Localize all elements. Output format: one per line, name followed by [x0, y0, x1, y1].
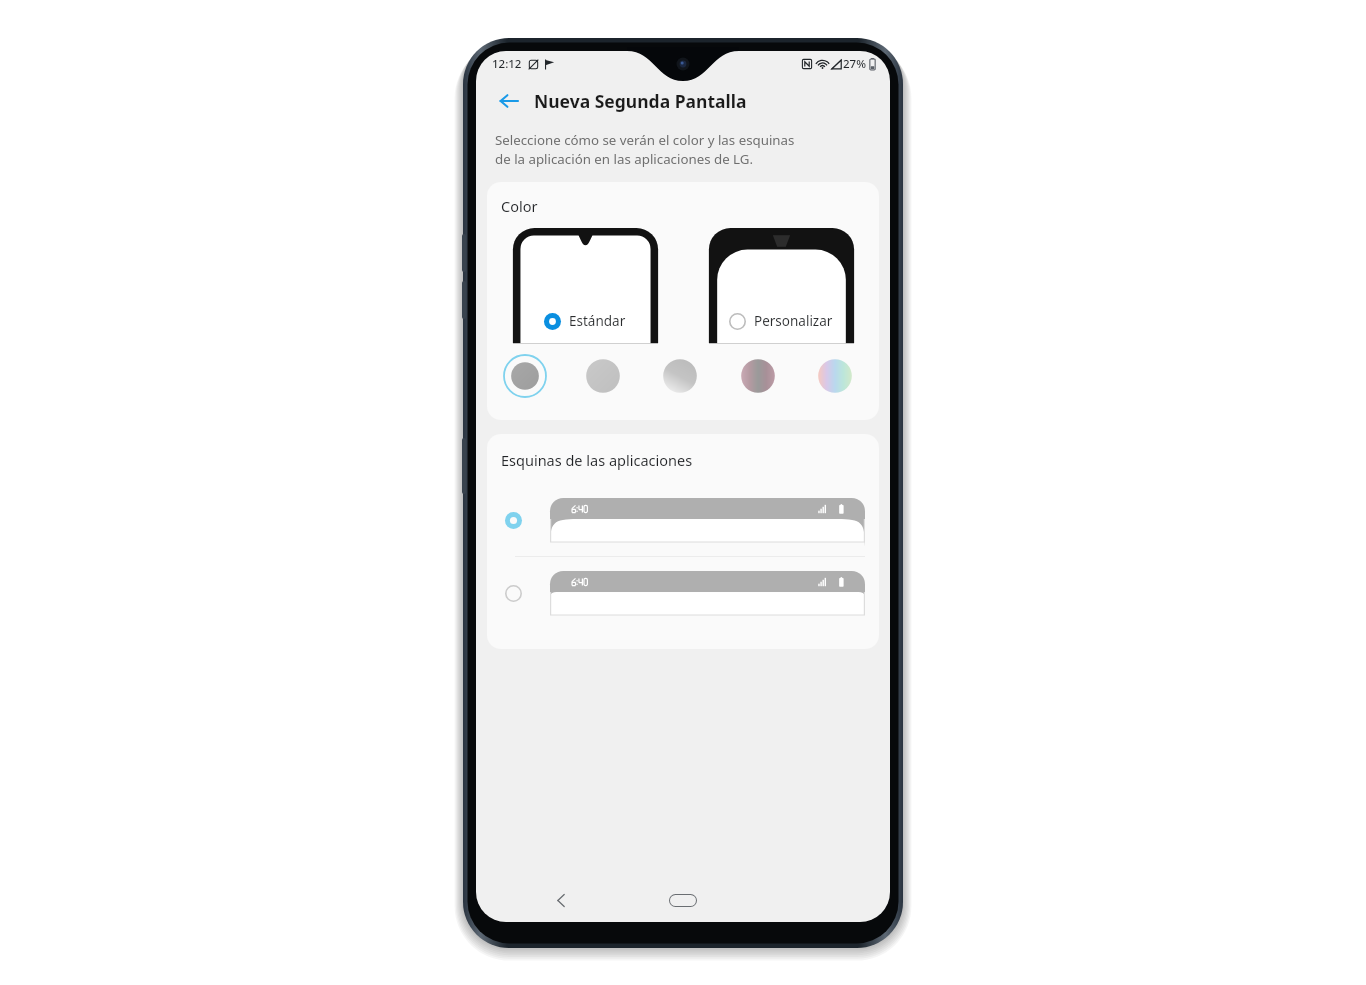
staticText: Estándar	[569, 312, 626, 330]
staticText: Personalizar	[754, 312, 833, 330]
button[interactable]: Color option 1	[503, 354, 547, 398]
staticText: Esquinas de las aplicaciones	[501, 450, 693, 470]
button[interactable]: Color option 3	[658, 354, 702, 398]
staticText: Seleccione cómo se verán el color y las …	[495, 131, 795, 168]
staticText: Nueva Segunda Pantalla	[534, 89, 747, 113]
button[interactable]: Color option 4	[736, 354, 780, 398]
button[interactable]: Back	[492, 84, 526, 118]
button[interactable]: Estándar	[487, 228, 683, 330]
staticText: 27%	[843, 56, 866, 72]
staticText: 12:12	[492, 56, 522, 72]
button[interactable]	[487, 557, 879, 629]
button[interactable]: Home	[660, 885, 706, 915]
button[interactable]: Color option 5	[813, 354, 857, 398]
button[interactable]: Personalizar	[683, 228, 879, 330]
button[interactable]: Color option 2	[581, 354, 625, 398]
staticText: Color	[501, 196, 538, 216]
button[interactable]	[487, 484, 879, 556]
button[interactable]: Back	[544, 883, 578, 917]
